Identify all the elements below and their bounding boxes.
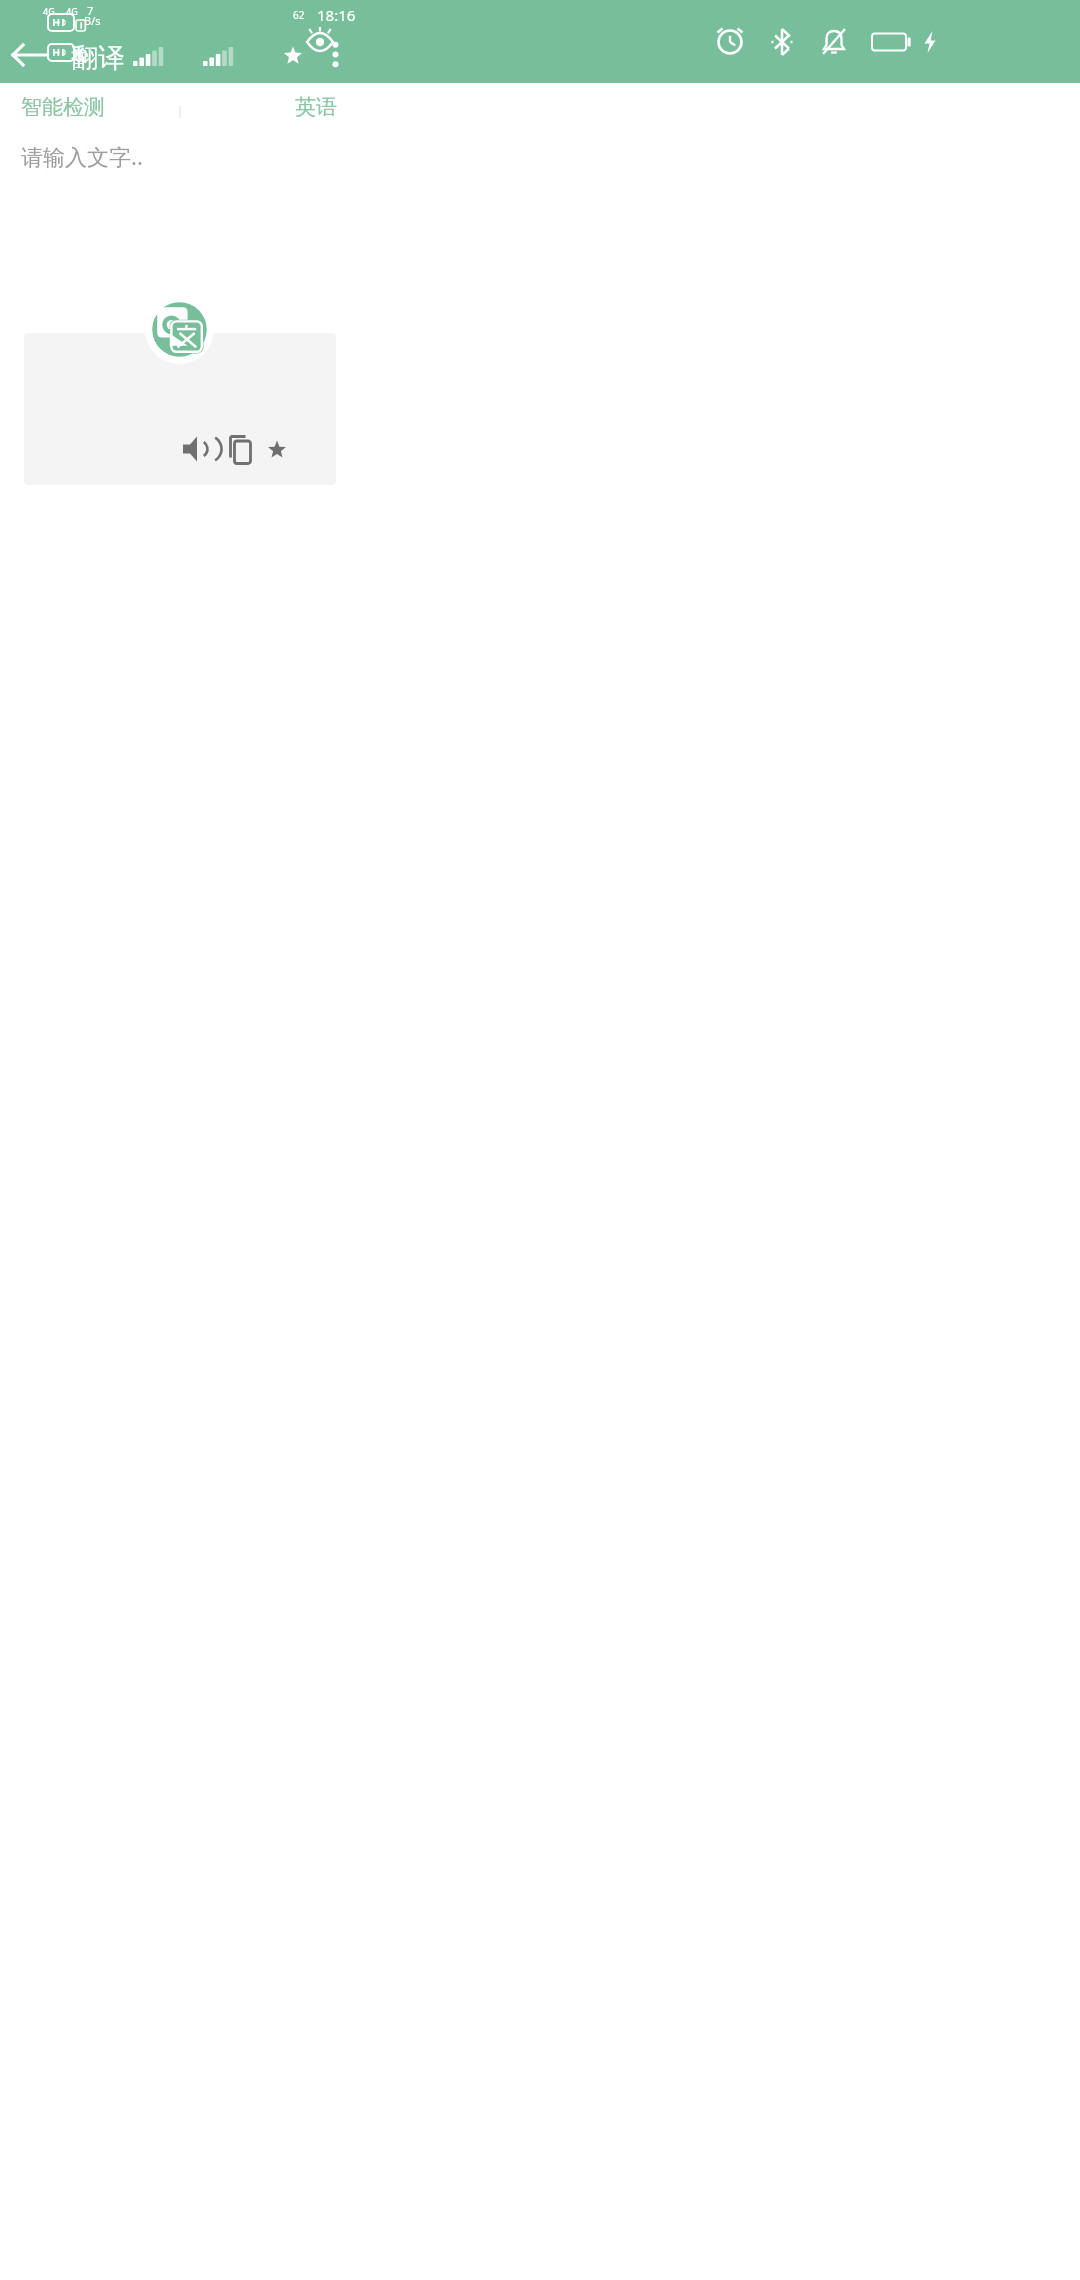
staticText: 请输入文字.. (21, 141, 143, 171)
staticText: 18:16 (317, 5, 356, 25)
button[interactable]: More options (317, 26, 354, 83)
button[interactable]: Back (10, 26, 50, 83)
button[interactable]: 请输入文字.. (0, 128, 1080, 228)
staticText: 7 (87, 3, 94, 18)
button[interactable]: Add to favorites (257, 429, 297, 469)
staticText: 英语 (295, 94, 337, 117)
button[interactable]: 英语 (260, 94, 347, 117)
staticText: 智能检测 (21, 94, 105, 117)
button[interactable]: Translate (145, 295, 214, 364)
staticText: 4G (43, 5, 55, 17)
button[interactable]: Speak (177, 429, 217, 469)
button[interactable]: Favorite (273, 26, 313, 83)
staticText: 4G (66, 5, 78, 17)
staticText: B/s (84, 13, 101, 28)
staticText: 62 (293, 8, 305, 22)
button[interactable]: 智能检测 (13, 94, 103, 117)
button[interactable]: Copy (217, 429, 257, 469)
staticText: 翻译 (71, 41, 125, 75)
